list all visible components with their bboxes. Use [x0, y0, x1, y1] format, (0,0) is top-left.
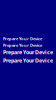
staticText: Prepare Your Device	[3, 57, 53, 64]
staticText: Prepare Your Device	[3, 36, 42, 41]
staticText: Prepare Your Device	[3, 49, 53, 56]
staticText: Prepare Your Device	[3, 42, 42, 48]
